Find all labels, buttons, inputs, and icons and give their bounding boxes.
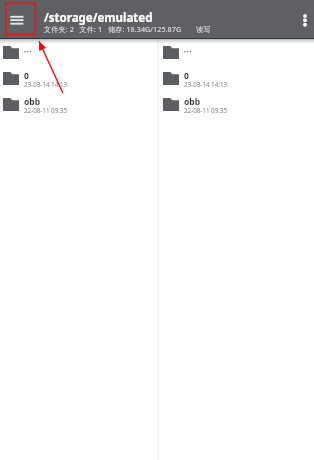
button[interactable]: obb [0,91,157,117]
staticText: 读写 [196,25,211,34]
staticText: 0 [24,70,29,82]
staticText: 0 [184,70,189,82]
button[interactable] [159,39,314,65]
staticText: 23-03-14 14:13 [24,80,68,89]
button[interactable] [0,39,157,65]
staticText: 22-08-11 09:35 [24,106,68,115]
button[interactable]: More options [290,0,314,39]
staticText: obb [184,96,201,108]
staticText: 文件夹: 2 文件: 1 储存: 18.34G/125.87G [44,24,182,34]
staticText: obb [24,96,41,108]
staticText: 22-08-11 09:35 [184,106,228,115]
button[interactable]: 0 [0,65,157,91]
button[interactable]: 0 [159,65,314,91]
staticText: 23-03-14 14:13 [184,80,228,89]
staticText: /storage/emulated [44,10,153,26]
button[interactable]: obb [159,91,314,117]
button[interactable]: Open navigation menu [5,3,35,33]
